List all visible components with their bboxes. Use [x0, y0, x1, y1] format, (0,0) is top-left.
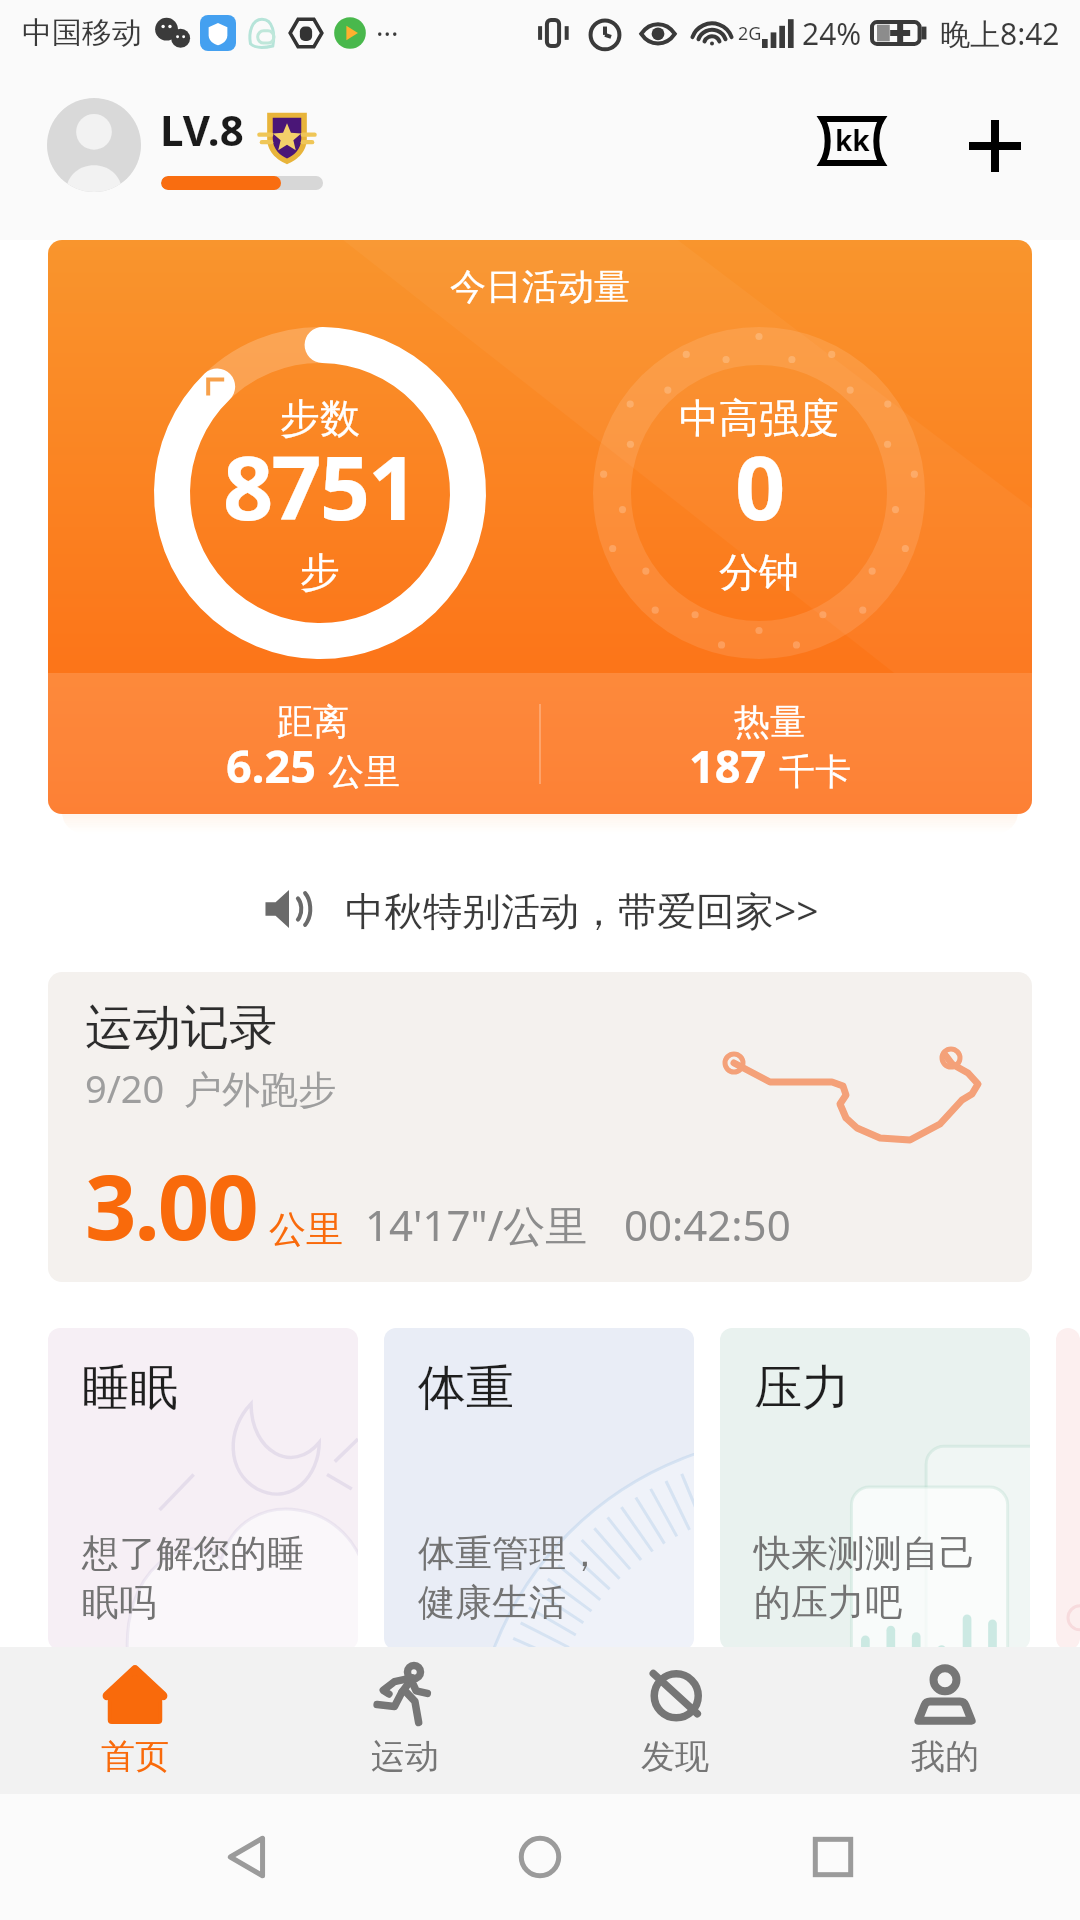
- staticText: 6.25: [226, 735, 316, 796]
- staticText: 体重: [418, 1358, 514, 1418]
- staticText: 千卡: [779, 749, 851, 794]
- button[interactable]: 今日活动量: [48, 240, 1032, 814]
- staticText: 我的: [911, 1735, 979, 1778]
- staticText: 8751: [223, 426, 417, 546]
- staticText: 运动记录: [85, 998, 277, 1058]
- button[interactable]: Coupon: [811, 108, 893, 174]
- staticText: 00:42:50: [624, 1196, 791, 1253]
- staticText: 中高强度: [679, 393, 839, 443]
- staticText: 晚上8:42: [940, 13, 1060, 54]
- button[interactable]: 体重: [384, 1328, 694, 1650]
- button[interactable]: Back: [203, 1812, 293, 1902]
- staticText: LV.8: [160, 101, 244, 158]
- staticText: 14'17"/公里: [365, 1196, 588, 1253]
- button[interactable]: 压力: [720, 1328, 1030, 1650]
- staticText: 24%: [802, 13, 862, 54]
- staticText: 中秋特别活动，带爱回家>>: [345, 883, 819, 936]
- button[interactable]: 睡眠: [48, 1328, 358, 1650]
- button[interactable]: 首页: [0, 1647, 270, 1794]
- staticText: 快来测测自己 的压力吧: [754, 1530, 976, 1626]
- staticText: 步: [300, 547, 340, 597]
- staticText: 首页: [101, 1735, 169, 1778]
- staticText: 体重管理， 健康生活: [418, 1530, 603, 1626]
- staticText: 发现: [641, 1735, 709, 1778]
- button[interactable]: Add: [957, 108, 1033, 184]
- staticText: 睡眠: [82, 1358, 178, 1418]
- staticText: 分钟: [719, 547, 799, 597]
- staticText: 热量: [734, 699, 806, 744]
- staticText: 公里: [269, 1206, 343, 1253]
- staticText: 步数: [280, 393, 360, 443]
- staticText: 距离: [277, 699, 349, 744]
- staticText: 压力: [754, 1358, 850, 1418]
- staticText: 0: [735, 426, 784, 546]
- staticText: 2G: [738, 21, 762, 46]
- button[interactable]: 发现: [540, 1647, 810, 1794]
- button[interactable]: 中秋特别活动，带爱回家>>: [0, 866, 1080, 952]
- button[interactable]: 我的: [810, 1647, 1080, 1794]
- staticText: 今日活动量: [450, 264, 630, 309]
- staticText: 中国移动: [22, 14, 142, 52]
- staticText: 想了解您的睡 眠吗: [82, 1530, 304, 1626]
- staticText: kk: [835, 121, 870, 159]
- button[interactable]: 运动: [270, 1647, 540, 1794]
- staticText: 公里: [328, 749, 400, 794]
- button[interactable]: Profile: [47, 98, 141, 192]
- staticText: 运动: [371, 1735, 439, 1778]
- button[interactable]: 运动记录: [48, 972, 1032, 1282]
- staticText: 3.00: [85, 1144, 257, 1267]
- staticText: 9/20 户外跑步: [85, 1062, 337, 1114]
- staticText: 187: [689, 735, 767, 796]
- staticText: ···: [376, 14, 399, 52]
- button[interactable]: Recent apps: [788, 1812, 878, 1902]
- button[interactable]: Home: [495, 1812, 585, 1902]
